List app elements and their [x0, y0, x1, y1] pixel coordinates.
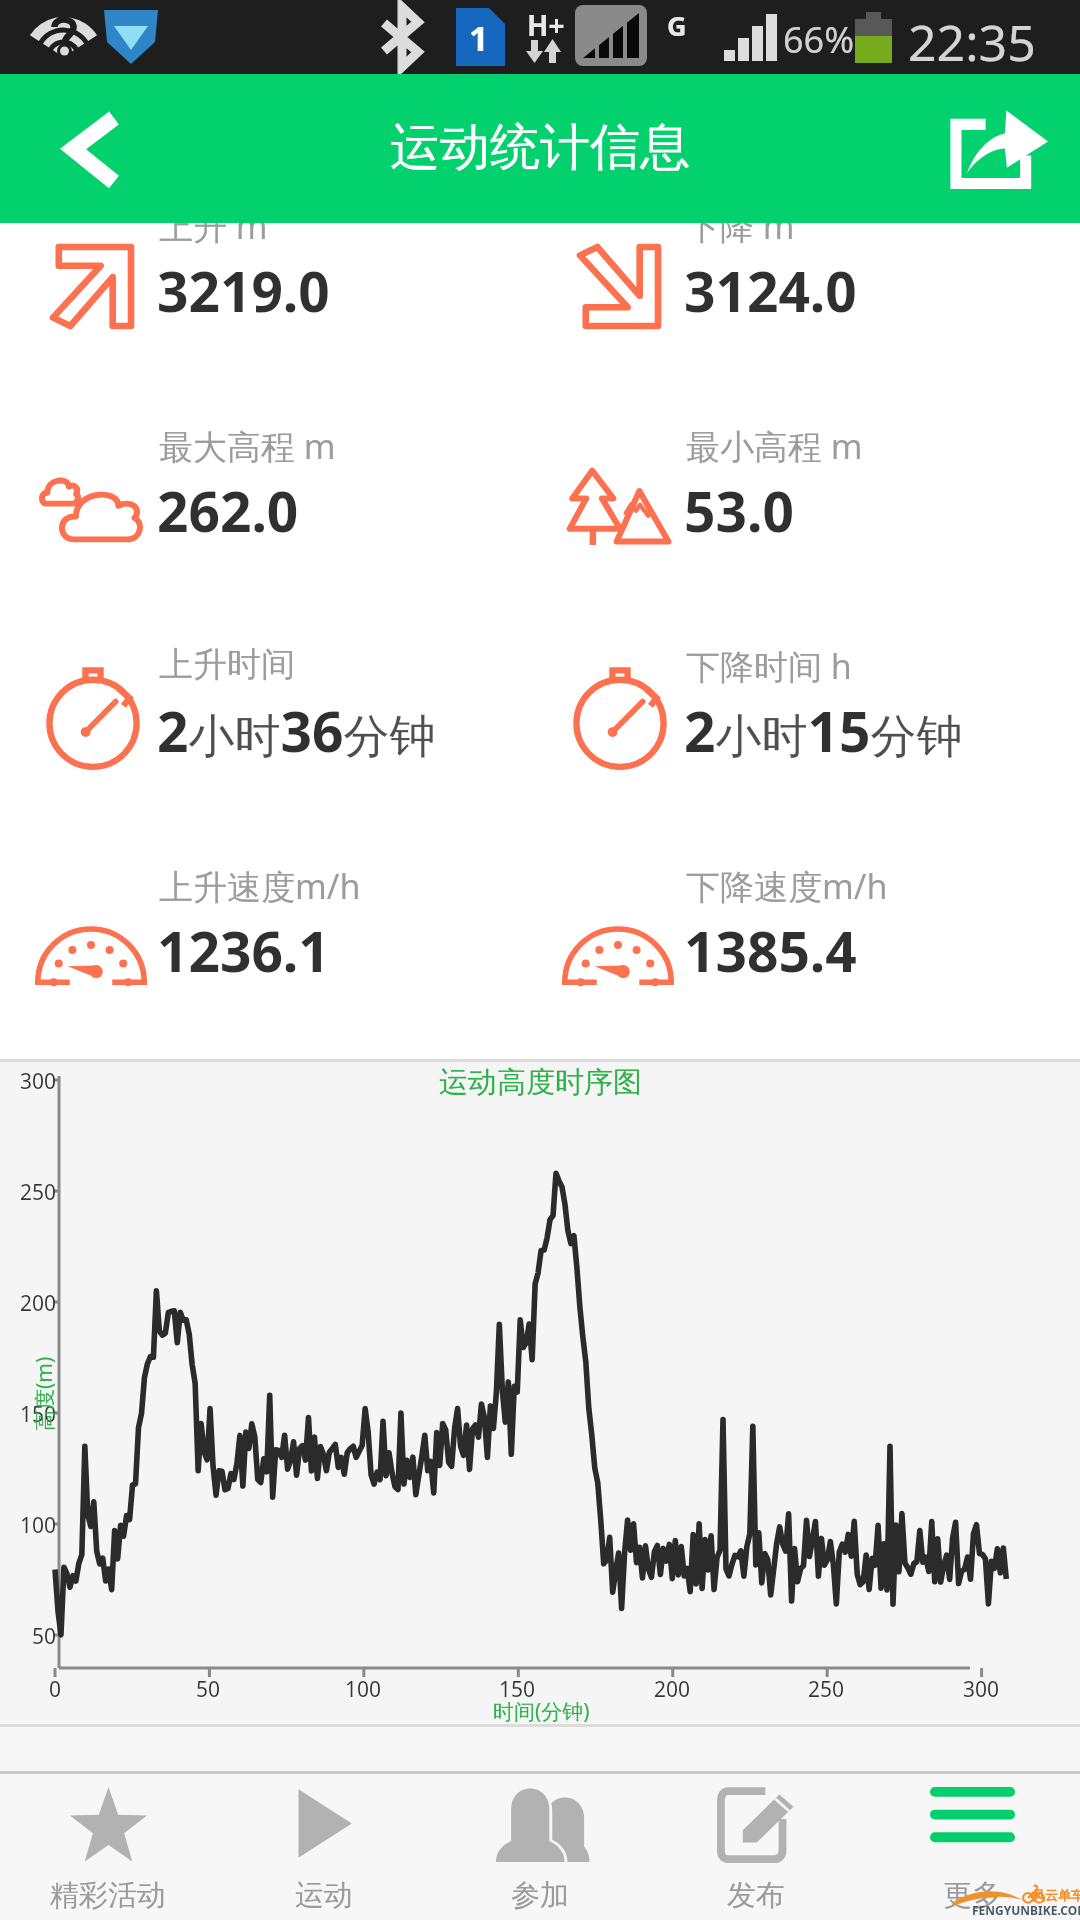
- staticText: 250: [808, 1675, 845, 1704]
- staticText: 100: [345, 1675, 382, 1704]
- staticText: 3124.0: [684, 253, 857, 328]
- staticText: 运动: [295, 1877, 353, 1914]
- staticText: 250: [20, 1178, 57, 1207]
- staticText: 150: [20, 1400, 57, 1429]
- button[interactable]: 更多: [864, 1774, 1080, 1920]
- staticText: H+: [527, 6, 565, 44]
- staticText: G: [667, 7, 687, 44]
- staticText: 下降时间 h: [686, 643, 852, 689]
- button[interactable]: 参加: [432, 1774, 648, 1920]
- button[interactable]: Back: [45, 105, 143, 193]
- button[interactable]: 发布: [648, 1774, 864, 1920]
- staticText: 1: [469, 15, 489, 61]
- staticText: 50: [32, 1622, 57, 1651]
- staticText: 66%: [783, 15, 855, 64]
- staticText: 53.0: [684, 473, 794, 548]
- staticText: 50: [196, 1675, 221, 1704]
- staticText: 300: [20, 1067, 57, 1096]
- staticText: 运动统计信息: [390, 116, 690, 179]
- button[interactable]: 上升速度m/h: [0, 863, 527, 1039]
- button[interactable]: 精彩活动: [0, 1774, 216, 1920]
- staticText: 下降速度m/h: [686, 863, 888, 909]
- button[interactable]: 下降 m: [527, 223, 1080, 423]
- staticText: 22:35: [908, 8, 1036, 76]
- staticText: 参加: [511, 1877, 569, 1914]
- staticText: 下降 m: [686, 223, 795, 249]
- staticText: 高度(m): [30, 1356, 59, 1431]
- staticText: 200: [654, 1675, 691, 1704]
- staticText: 200: [20, 1289, 57, 1318]
- staticText: 1385.4: [684, 913, 857, 988]
- button[interactable]: 下降时间 h: [527, 643, 1080, 863]
- staticText: 上升速度m/h: [159, 863, 361, 909]
- button[interactable]: Share: [944, 108, 1048, 190]
- staticText: 100: [20, 1511, 57, 1540]
- button[interactable]: 最小高程 m: [527, 423, 1080, 643]
- staticText: FENGYUNBIKE.COM: [972, 1902, 1080, 1918]
- staticText: 最小高程 m: [686, 423, 863, 469]
- staticText: 更多: [943, 1877, 1001, 1914]
- staticText: 2小时36分钟: [157, 693, 436, 768]
- staticText: 0: [49, 1675, 62, 1704]
- staticText: 时间(分钟): [493, 1697, 590, 1726]
- staticText: 300: [963, 1675, 1000, 1704]
- button[interactable]: 最大高程 m: [0, 423, 527, 643]
- button[interactable]: 运动: [216, 1774, 432, 1920]
- staticText: 1236.1: [157, 913, 330, 988]
- staticText: 上升 m: [159, 223, 268, 249]
- button[interactable]: 上升 m: [0, 223, 527, 423]
- staticText: 风云单车: [1032, 1887, 1080, 1903]
- staticText: 150: [499, 1675, 536, 1704]
- staticText: 上升时间: [159, 643, 295, 686]
- staticText: 最大高程 m: [159, 423, 336, 469]
- staticText: 运动高度时序图: [439, 1064, 642, 1101]
- staticText: 发布: [727, 1877, 785, 1914]
- staticText: 262.0: [157, 473, 299, 548]
- button[interactable]: 上升时间: [0, 643, 527, 863]
- button[interactable]: 下降速度m/h: [527, 863, 1080, 1039]
- staticText: 3219.0: [157, 253, 330, 328]
- staticText: 2小时15分钟: [684, 693, 963, 768]
- staticText: 精彩活动: [50, 1877, 166, 1914]
